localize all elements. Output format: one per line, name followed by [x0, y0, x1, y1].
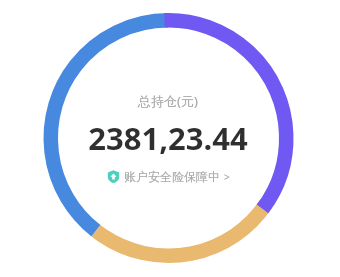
- other: 账户安全险: [107, 170, 120, 183]
- staticText: 2381,23.44: [88, 117, 248, 159]
- staticText: >: [224, 170, 230, 184]
- button[interactable]: 账户安全险: [103, 167, 234, 186]
- staticText: 总持仓(元): [138, 92, 198, 110]
- staticText: 账户安全险保障中: [124, 169, 220, 184]
